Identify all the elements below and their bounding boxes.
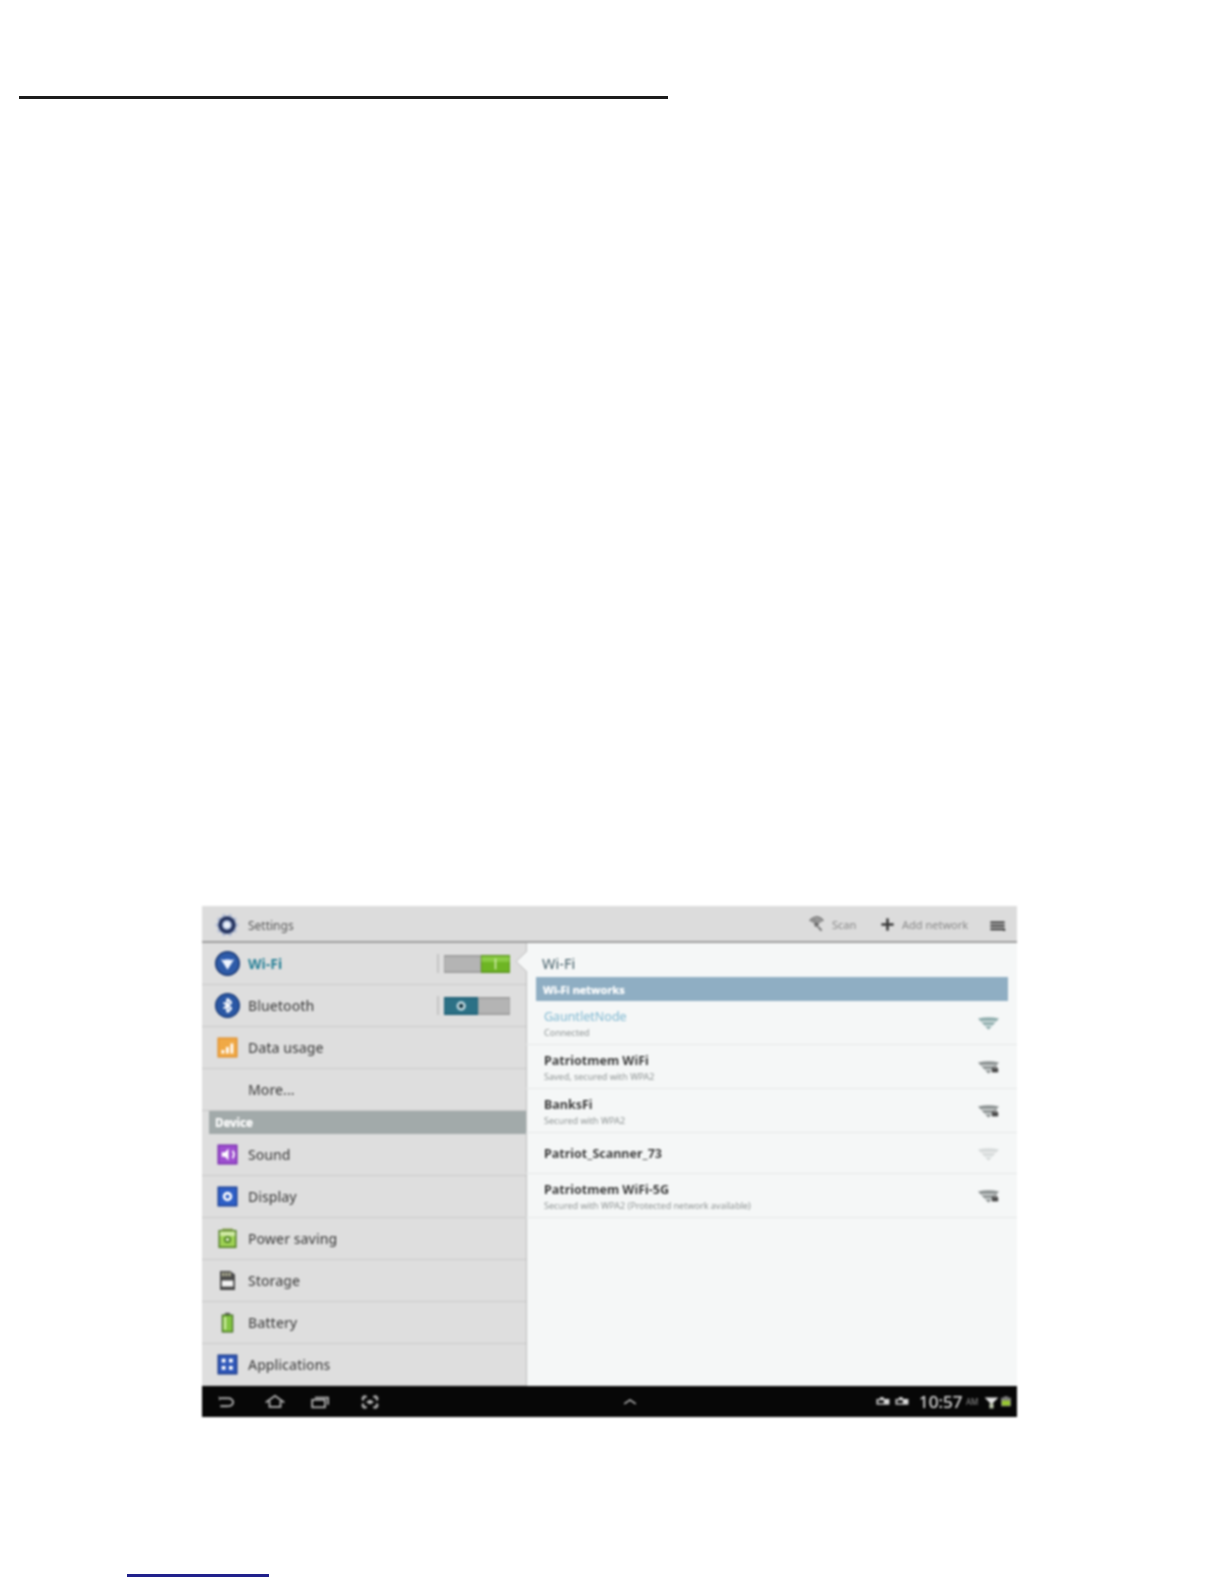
staticText: Secured with WPA2 (Protected network ava…	[544, 1199, 751, 1211]
staticText: 10:57	[919, 1390, 963, 1413]
button[interactable]: GauntletNode	[526, 1001, 1017, 1045]
staticText: Add network	[902, 917, 969, 932]
button[interactable]: Storage	[202, 1260, 526, 1302]
staticText: Display	[248, 1187, 297, 1206]
staticText: Patriotmem WiFi	[544, 1052, 649, 1069]
staticText: Patriot_Scanner_73	[544, 1145, 662, 1162]
button[interactable]: Patriotmem WiFi	[526, 1045, 1017, 1089]
staticText: Patriotmem WiFi-5G	[544, 1181, 669, 1198]
button[interactable]: Patriotmem WiFi-5G	[526, 1174, 1017, 1218]
staticText: Wi-Fi	[542, 953, 576, 973]
button[interactable]: More...	[202, 1069, 526, 1111]
staticText: Saved, secured with WPA2	[544, 1070, 655, 1082]
button[interactable]: Back	[212, 1388, 240, 1416]
button[interactable]: Show notifications	[616, 1388, 644, 1416]
button[interactable]: Scan	[806, 916, 860, 933]
staticText: Power saving	[248, 1229, 338, 1248]
button[interactable]: Recent apps	[307, 1388, 335, 1416]
button[interactable]: Add network	[876, 916, 972, 933]
staticText: Scan	[832, 917, 857, 932]
staticText: Data usage	[248, 1038, 324, 1057]
staticText: AM	[966, 1396, 979, 1407]
staticText: Connected	[544, 1026, 590, 1038]
button[interactable]: Display	[202, 1176, 526, 1218]
staticText: Battery	[248, 1313, 298, 1332]
button[interactable]: BanksFi	[526, 1089, 1017, 1133]
button[interactable]: Data usage	[202, 1027, 526, 1069]
staticText: BanksFi	[544, 1096, 593, 1113]
staticText: Wi-Fi	[248, 954, 283, 973]
button[interactable]: More options	[986, 914, 1008, 936]
staticText: Wi-Fi networks	[543, 982, 625, 997]
button[interactable]: Power saving	[202, 1218, 526, 1260]
staticText: Device	[215, 1115, 253, 1131]
staticText: Bluetooth	[248, 996, 315, 1015]
staticText: Sound	[248, 1145, 291, 1164]
staticText: GauntletNode	[544, 1008, 627, 1025]
button[interactable]: Patriot_Scanner_73	[526, 1133, 1017, 1174]
button[interactable]: Sound	[202, 1134, 526, 1176]
staticText: More...	[248, 1080, 295, 1099]
staticText: Applications	[248, 1355, 331, 1374]
button[interactable]: Screenshot	[356, 1388, 384, 1416]
staticText: Settings	[248, 917, 294, 933]
button[interactable]: Battery	[202, 1302, 526, 1344]
staticText: Storage	[248, 1271, 300, 1290]
button[interactable]: Wi-Fi	[202, 943, 526, 985]
staticText: Secured with WPA2	[544, 1114, 626, 1126]
button[interactable]: Bluetooth	[202, 985, 526, 1027]
button[interactable]: Applications	[202, 1344, 526, 1386]
button[interactable]: Home	[261, 1388, 289, 1416]
